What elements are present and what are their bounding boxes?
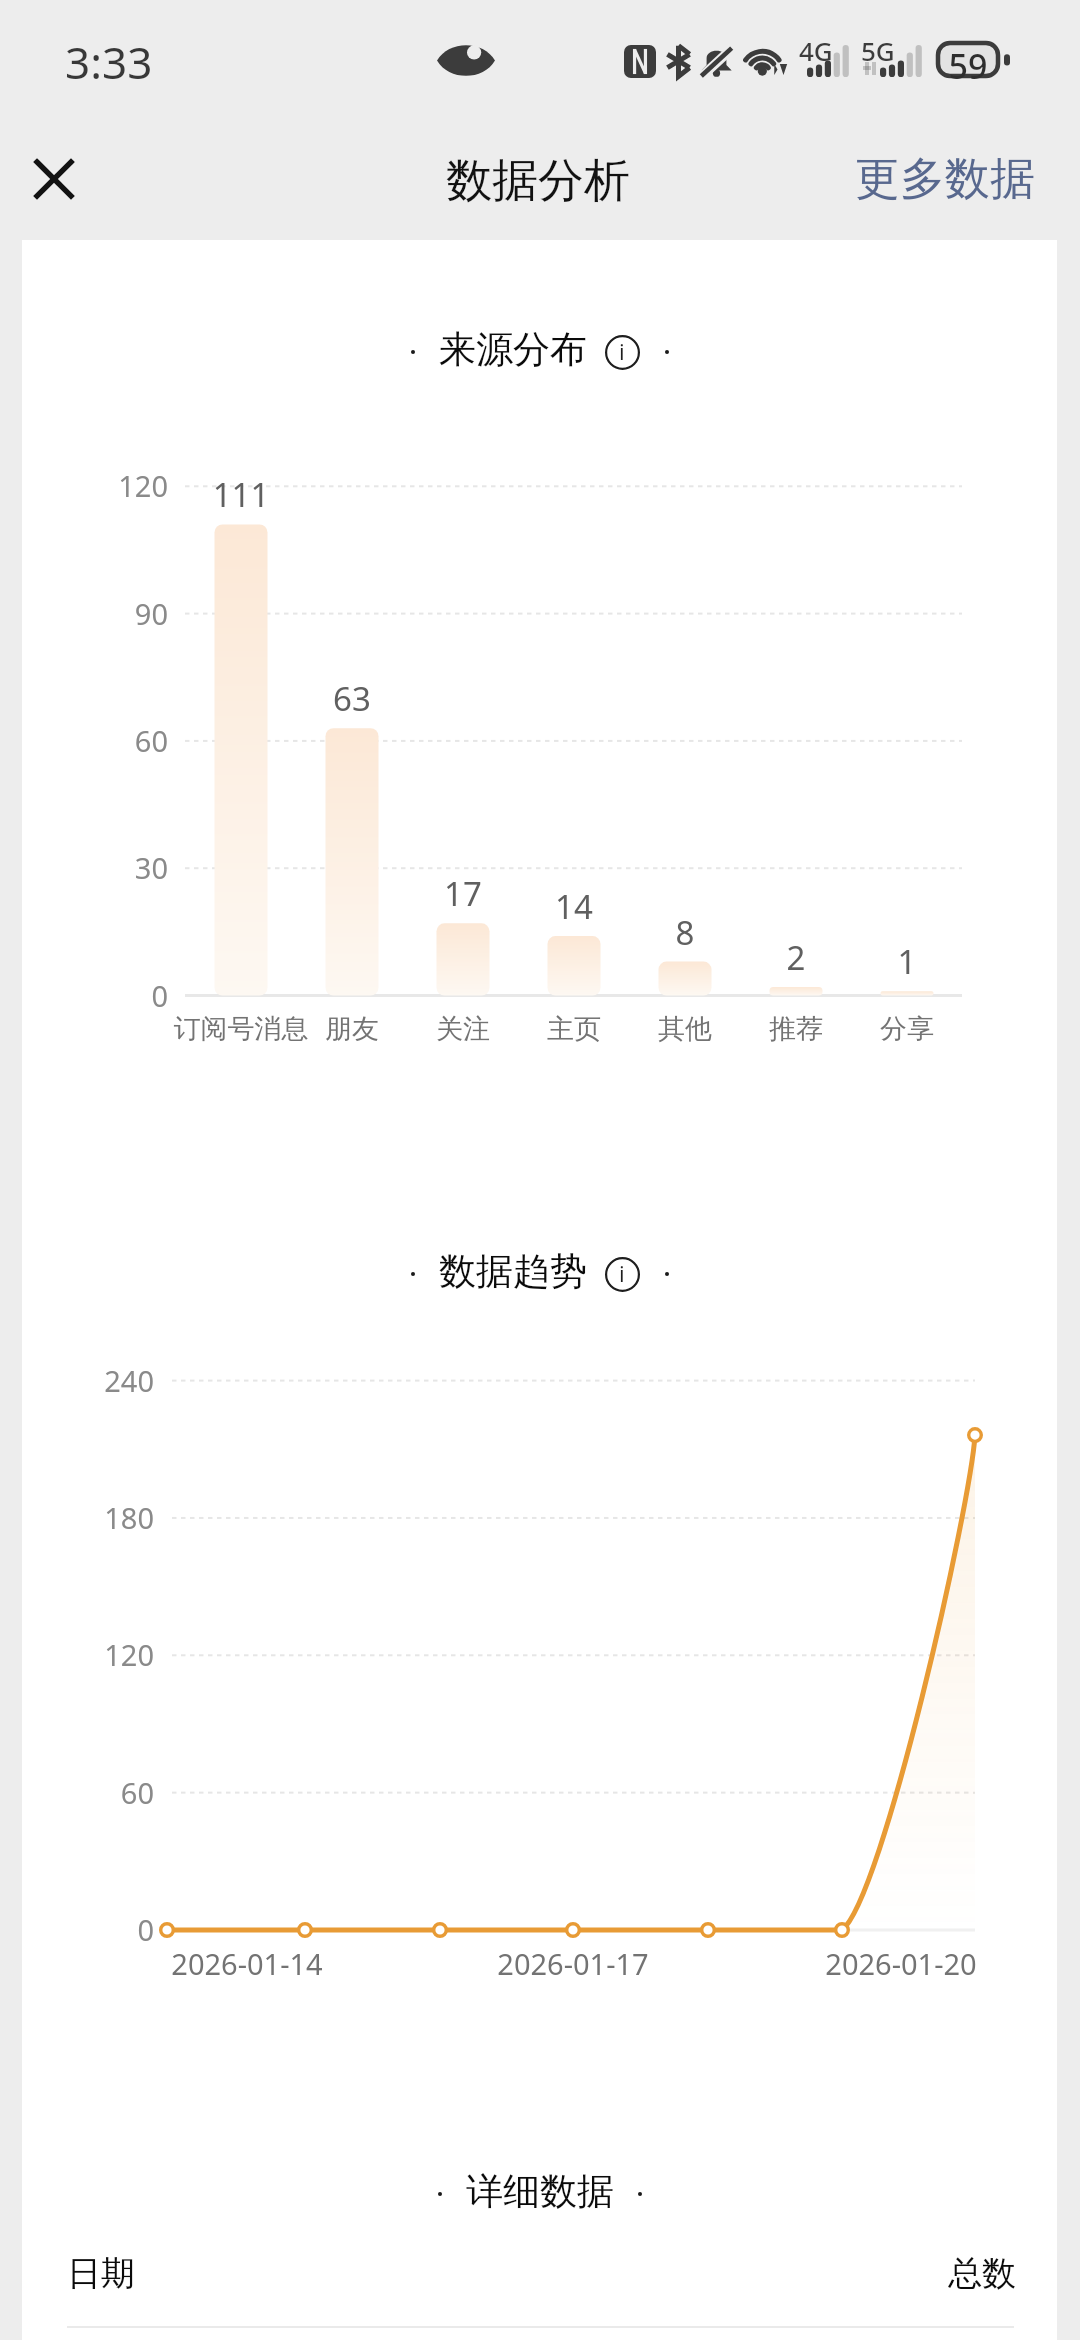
staticText: 详细数据 [466, 2168, 614, 2215]
staticText: 关注 [353, 1012, 573, 1046]
staticText: 120 [47, 466, 168, 505]
staticText: i [619, 1258, 625, 1288]
staticText: 111 [161, 472, 321, 517]
staticText: 朋友 [242, 1012, 462, 1046]
staticText: 59 [936, 43, 1000, 89]
staticText: 0 [47, 976, 168, 1015]
staticText: 60 [33, 1773, 154, 1812]
staticText: 其他 [575, 1012, 795, 1046]
button[interactable]: 更多数据 [831, 151, 1080, 208]
staticText: 2026-01-20 [751, 1944, 1051, 1983]
staticText: 推荐 [686, 1012, 906, 1046]
staticText: 0 [33, 1910, 154, 1949]
staticText: 2 [716, 935, 876, 980]
staticText: 3:33 [65, 32, 153, 92]
button[interactable]: Info [603, 333, 641, 371]
staticText: 数据分析 [446, 152, 630, 210]
staticText: i [619, 336, 625, 366]
staticText: 120 [33, 1635, 154, 1674]
staticText: 30 [47, 848, 168, 887]
staticText: 240 [33, 1361, 154, 1400]
staticText: 分享 [797, 1012, 1017, 1046]
staticText: 14 [494, 884, 654, 929]
staticText: 2026-01-14 [97, 1944, 397, 1983]
staticText: 90 [47, 594, 168, 633]
staticText: 来源分布 [439, 326, 587, 373]
staticText: 总数 [0, 2252, 1016, 2295]
staticText: 数据趋势 [439, 1248, 587, 1295]
staticText: 更多数据 [855, 151, 1035, 208]
staticText: 日期 [67, 2252, 135, 2295]
staticText: 订阅号消息 [131, 1012, 351, 1046]
staticText: 8 [605, 910, 765, 955]
staticText: 1 [827, 939, 987, 984]
button[interactable]: Info [603, 1255, 641, 1293]
staticText: 主页 [464, 1012, 684, 1046]
staticText: 17 [383, 871, 543, 916]
button[interactable]: Close [0, 118, 108, 240]
staticText: 63 [272, 676, 432, 721]
staticText: 2026-01-17 [423, 1944, 723, 1983]
staticText: 4G [799, 33, 833, 68]
staticText: 60 [47, 721, 168, 760]
staticText: 180 [33, 1498, 154, 1537]
staticText: 5G [861, 33, 895, 68]
